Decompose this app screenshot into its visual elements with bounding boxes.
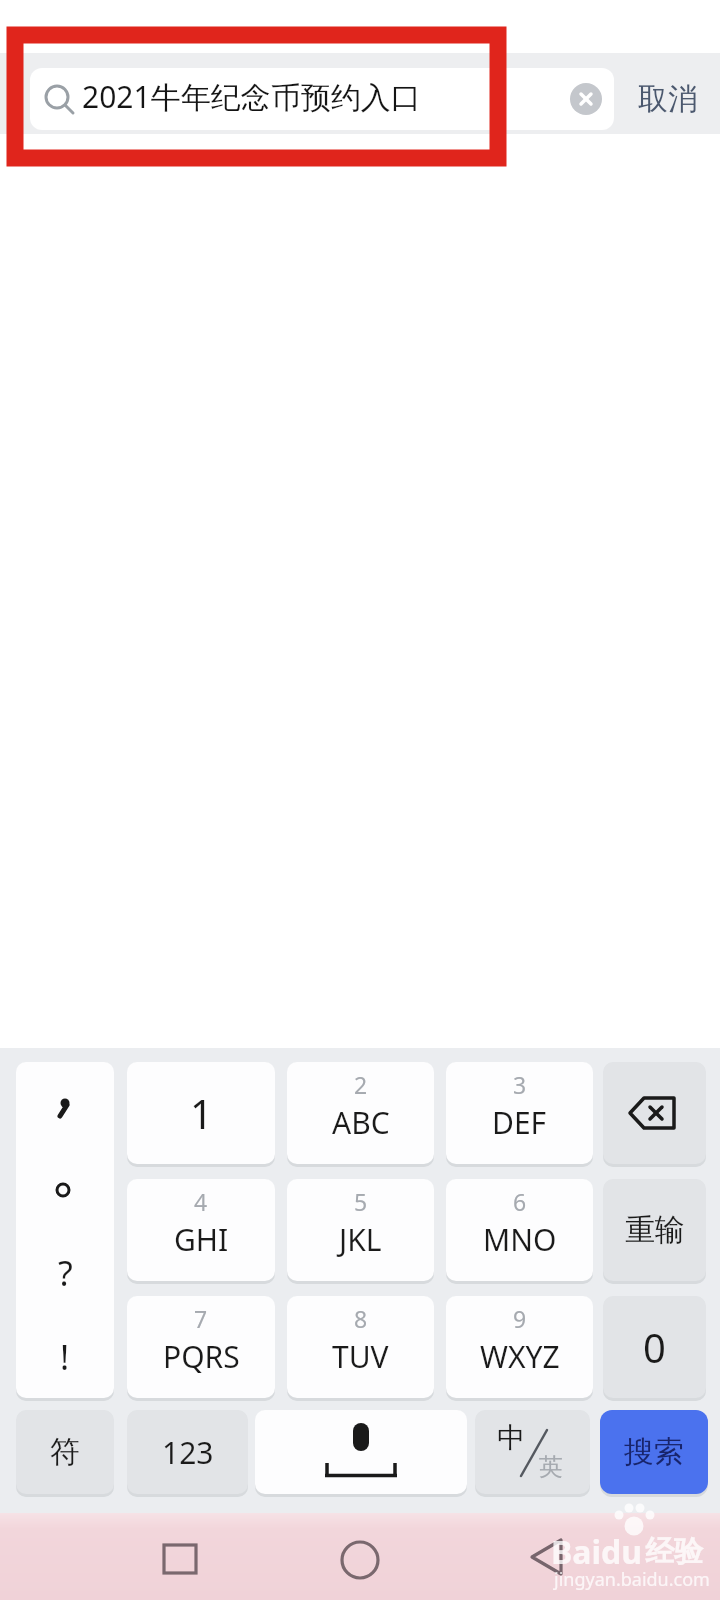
staticText: 2021牛年纪念币预约入口 xyxy=(82,76,421,117)
staticText: Baidu xyxy=(551,1530,643,1574)
button[interactable] xyxy=(570,83,602,115)
staticText: 8 xyxy=(354,1303,368,1334)
staticText: 9 xyxy=(513,1303,527,1334)
button[interactable]: 搜索 xyxy=(600,1410,708,1494)
button[interactable]: 123 xyxy=(127,1410,248,1494)
staticText: 5 xyxy=(354,1186,368,1217)
button[interactable]: 1 xyxy=(127,1062,275,1164)
staticText: 7 xyxy=(194,1303,208,1334)
staticText: ! xyxy=(60,1334,70,1380)
button[interactable]: 2021牛年纪念币预约入口 xyxy=(30,68,614,130)
staticText: 中 xyxy=(497,1420,525,1455)
staticText: ? xyxy=(58,1250,73,1296)
button[interactable]: 7 xyxy=(127,1296,275,1398)
staticText: 3 xyxy=(513,1069,527,1100)
button[interactable] xyxy=(255,1410,467,1494)
staticText: MNO xyxy=(483,1219,557,1260)
staticText: ABC xyxy=(332,1102,390,1143)
staticText: 英 xyxy=(539,1452,563,1482)
staticText: JKL xyxy=(339,1219,382,1260)
staticText: 0 xyxy=(643,1320,666,1374)
staticText: 4 xyxy=(194,1186,208,1217)
staticText: 符 xyxy=(50,1433,80,1471)
button[interactable]: ? xyxy=(16,1062,114,1398)
button[interactable]: 符 xyxy=(16,1410,114,1494)
staticText: WXYZ xyxy=(480,1336,560,1377)
staticText: 搜索 xyxy=(624,1433,684,1471)
button[interactable]: 中 xyxy=(475,1410,590,1494)
button[interactable]: 4 xyxy=(127,1179,275,1281)
staticText: 1 xyxy=(190,1086,213,1140)
button[interactable]: 8 xyxy=(287,1296,434,1398)
button[interactable]: 2 xyxy=(287,1062,434,1164)
button[interactable] xyxy=(157,1536,203,1582)
button[interactable] xyxy=(603,1062,706,1164)
button[interactable]: 取消 xyxy=(628,68,708,130)
button[interactable]: 3 xyxy=(446,1062,593,1164)
staticText: 经验 xyxy=(645,1533,703,1570)
button[interactable]: 5 xyxy=(287,1179,434,1281)
staticText: DEF xyxy=(492,1102,547,1143)
staticText: jingyan.baidu.com xyxy=(554,1567,710,1592)
button[interactable] xyxy=(522,1536,568,1582)
staticText: 123 xyxy=(162,1432,214,1473)
staticText: 6 xyxy=(513,1186,527,1217)
staticText: PQRS xyxy=(163,1336,240,1377)
button[interactable] xyxy=(337,1536,383,1582)
button[interactable]: 6 xyxy=(446,1179,593,1281)
button[interactable]: 9 xyxy=(446,1296,593,1398)
staticText: GHI xyxy=(174,1219,229,1260)
staticText: 重输 xyxy=(625,1211,685,1249)
button[interactable]: 重输 xyxy=(603,1179,706,1281)
staticText: 取消 xyxy=(638,80,698,118)
staticText: TUV xyxy=(332,1336,389,1377)
staticText: 2 xyxy=(354,1069,368,1100)
button[interactable]: 0 xyxy=(603,1296,706,1398)
